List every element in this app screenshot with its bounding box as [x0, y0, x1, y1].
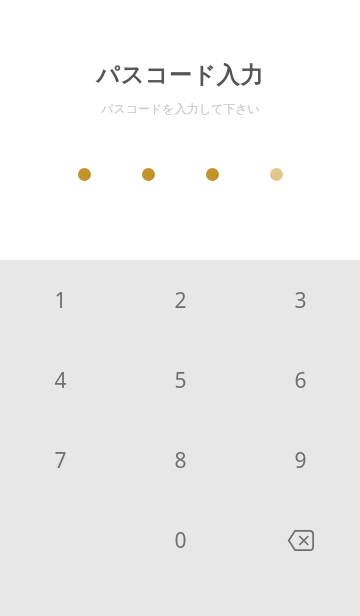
button[interactable]: 2	[120, 260, 240, 340]
staticText: 3	[294, 286, 307, 315]
button[interactable]: 5	[120, 340, 240, 420]
staticText: 4	[54, 366, 67, 395]
staticText: 2	[174, 286, 187, 315]
button[interactable]: 8	[120, 420, 240, 500]
staticText: 8	[174, 446, 187, 475]
staticText: 1	[54, 286, 67, 315]
button[interactable]: 7	[0, 420, 120, 500]
button[interactable]: 1	[0, 260, 120, 340]
button[interactable]: 6	[240, 340, 360, 420]
button[interactable]: 0	[120, 500, 240, 580]
button[interactable]: 4	[0, 340, 120, 420]
staticText: パスコードを入力して下さい	[101, 101, 260, 116]
staticText: 7	[54, 446, 67, 475]
staticText: 0	[174, 526, 187, 555]
staticText: 9	[294, 446, 307, 475]
button[interactable]: Backspace	[240, 500, 360, 580]
staticText: 6	[294, 366, 307, 395]
staticText: パスコード入力	[96, 61, 264, 90]
staticText: 5	[174, 366, 187, 395]
button[interactable]: 3	[240, 260, 360, 340]
button[interactable]: 9	[240, 420, 360, 500]
